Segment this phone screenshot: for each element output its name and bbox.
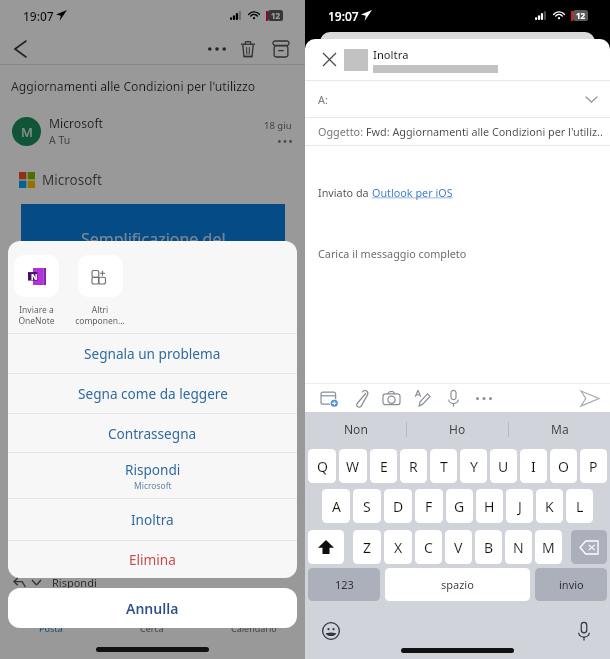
button[interactable]: Segna come da leggere: [8, 374, 297, 413]
button[interactable]: I: [520, 449, 547, 483]
button[interactable]: Contrassegna: [8, 414, 297, 452]
button[interactable]: N: [8, 255, 68, 326]
staticText: Contrassegna: [108, 424, 197, 443]
staticText: 12: [576, 10, 586, 21]
staticText: I: [531, 457, 536, 476]
staticText: Inviare a OneNote: [18, 304, 55, 326]
staticText: Inoltra: [373, 47, 409, 62]
button[interactable]: spazio: [385, 568, 530, 601]
button[interactable]: Non: [305, 412, 406, 446]
staticText: Z: [363, 538, 372, 557]
staticText: 18 giu: [264, 119, 292, 132]
button[interactable]: L: [566, 489, 593, 523]
button[interactable]: O: [550, 449, 577, 483]
button[interactable]: Send: [579, 387, 601, 409]
button[interactable]: Posta: [0, 621, 101, 635]
button[interactable]: X: [384, 530, 412, 564]
button[interactable]: 123: [308, 568, 380, 601]
button[interactable]: H: [476, 489, 503, 523]
button[interactable]: Ma: [509, 412, 610, 446]
button[interactable]: Attach: [350, 388, 370, 408]
staticText: Rispondi: [52, 575, 97, 590]
button[interactable]: Dictate: [443, 388, 463, 408]
staticText: J: [518, 497, 522, 516]
button[interactable]: Inoltra: [8, 499, 297, 540]
button[interactable]: W: [339, 449, 367, 483]
button[interactable]: Calendar: [319, 388, 339, 408]
staticText: 12: [271, 10, 281, 21]
button[interactable]: Calendario: [203, 621, 305, 635]
button[interactable]: E: [370, 449, 397, 483]
staticText: V: [454, 538, 463, 557]
button[interactable]: Ho: [407, 412, 508, 446]
button[interactable]: Segnala un problema: [8, 334, 297, 373]
staticText: 19:07: [328, 8, 359, 24]
staticText: Ma: [551, 421, 569, 437]
button[interactable]: S: [353, 489, 381, 523]
staticText: E: [380, 457, 388, 476]
button[interactable]: A:: [318, 81, 597, 117]
staticText: Inviato da: [318, 185, 372, 200]
button[interactable]: M: [535, 530, 562, 564]
button[interactable]: N: [505, 530, 532, 564]
button[interactable]: B: [475, 530, 502, 564]
staticText: Ho: [449, 421, 466, 437]
button[interactable]: Delete: [240, 41, 256, 57]
staticText: B: [484, 538, 494, 557]
staticText: Segna come da leggere: [78, 384, 228, 403]
button[interactable]: Y: [460, 449, 487, 483]
button[interactable]: Q: [308, 449, 336, 483]
staticText: Inoltra: [131, 510, 174, 529]
staticText: T: [440, 457, 448, 476]
button[interactable]: D: [384, 489, 412, 523]
button[interactable]: Outlook per iOS: [372, 185, 453, 200]
button[interactable]: Z: [353, 530, 381, 564]
staticText: M: [21, 123, 33, 141]
button[interactable]: F: [415, 489, 443, 523]
staticText: G: [454, 497, 465, 516]
button[interactable]: Shift: [308, 530, 344, 564]
staticText: Segnala un problema: [84, 344, 221, 363]
button[interactable]: R: [400, 449, 427, 483]
button[interactable]: Cerca: [101, 621, 203, 635]
staticText: N: [31, 271, 38, 282]
button[interactable]: K: [536, 489, 563, 523]
button[interactable]: T: [430, 449, 457, 483]
button[interactable]: Format: [412, 388, 432, 408]
staticText: U: [498, 457, 509, 476]
button[interactable]: Elimina: [8, 541, 297, 578]
button[interactable]: Close: [323, 53, 336, 66]
button[interactable]: G: [446, 489, 473, 523]
button[interactable]: Annulla: [8, 588, 297, 628]
staticText: Elimina: [129, 550, 176, 569]
button[interactable]: More options: [474, 388, 494, 408]
button[interactable]: Camera: [381, 388, 401, 408]
staticText: Y: [470, 457, 478, 476]
staticText: D: [393, 497, 404, 516]
staticText: Oggetto:: [318, 124, 366, 139]
staticText: Microsoft: [134, 480, 172, 492]
button[interactable]: Rispondi: [8, 453, 297, 498]
staticText: M: [542, 538, 555, 557]
button[interactable]: U: [490, 449, 517, 483]
button[interactable]: P: [580, 449, 607, 483]
button[interactable]: More: [208, 40, 226, 58]
button[interactable]: Carica il messaggio completo: [318, 246, 467, 261]
button[interactable]: A: [322, 489, 350, 523]
button[interactable]: Backspace: [571, 530, 607, 564]
button[interactable]: invio: [535, 568, 607, 601]
button[interactable]: Altri componen...: [68, 255, 132, 326]
button[interactable]: Archive: [273, 41, 289, 57]
staticText: Posta: [39, 622, 63, 634]
button[interactable]: C: [415, 530, 442, 564]
button[interactable]: Dictation: [574, 621, 594, 641]
staticText: Rispondi: [125, 460, 181, 479]
button[interactable]: Oggetto:: [318, 118, 602, 145]
button[interactable]: V: [445, 530, 472, 564]
staticText: A Tu: [49, 133, 71, 147]
staticText: Calendario: [231, 622, 277, 634]
staticText: Non: [344, 421, 368, 437]
button[interactable]: Back: [15, 41, 26, 57]
button[interactable]: J: [506, 489, 533, 523]
button[interactable]: Emoji: [321, 621, 341, 641]
